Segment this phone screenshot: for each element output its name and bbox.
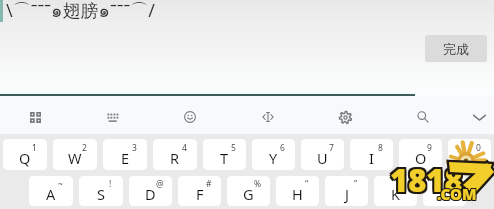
staticText: (: [403, 178, 406, 190]
staticText: J: [345, 184, 349, 204]
staticText: H: [292, 184, 303, 204]
button[interactable]: Move cursor: [251, 100, 285, 134]
staticText: .COM: [438, 185, 478, 205]
staticText: 1818: [392, 159, 465, 201]
staticText: 7: [329, 142, 334, 154]
button[interactable]: S: [79, 176, 123, 206]
button[interactable]: W: [53, 139, 97, 170]
staticText: S: [97, 184, 105, 204]
button[interactable]: Hide keyboard: [462, 100, 494, 134]
staticText: 6: [280, 142, 285, 154]
staticText: 1818: [390, 161, 463, 203]
staticText: 1818: [390, 157, 463, 199]
staticText: .COM: [436, 185, 476, 205]
staticText: %: [254, 178, 262, 190]
staticText: E: [121, 148, 130, 168]
staticText: .COM: [437, 184, 477, 204]
staticText: #: [206, 178, 212, 190]
staticText: 完成: [443, 41, 469, 57]
staticText: .COM: [438, 183, 478, 203]
staticText: ~: [58, 178, 63, 190]
staticText: A: [46, 184, 56, 204]
staticText: 2: [82, 142, 87, 154]
staticText: .COM: [437, 185, 477, 205]
button[interactable]: R: [153, 139, 197, 170]
button[interactable]: Emoticons: [173, 100, 207, 134]
staticText: O: [415, 148, 427, 168]
staticText: 9: [427, 142, 432, 154]
staticText: 0: [476, 142, 481, 154]
staticText: 1818: [392, 157, 465, 199]
button[interactable]: Q: [3, 139, 47, 170]
staticText: G: [243, 184, 254, 204]
button[interactable]: J: [325, 176, 368, 206]
staticText: !: [109, 178, 112, 190]
staticText: .COM: [436, 183, 476, 203]
staticText: “: [305, 178, 309, 190]
staticText: U: [317, 148, 328, 168]
staticText: 1818: [388, 159, 461, 201]
staticText: F: [196, 184, 204, 204]
button[interactable]: U: [301, 139, 344, 170]
staticText: T: [220, 148, 229, 168]
staticText: 1818: [388, 161, 461, 203]
staticText: 5: [231, 142, 236, 154]
staticText: @: [156, 178, 164, 190]
button[interactable]: Y: [252, 139, 295, 170]
button[interactable]: A: [29, 176, 73, 206]
staticText: K: [391, 184, 400, 204]
button[interactable]: G: [227, 176, 270, 206]
button[interactable]: 完成: [425, 35, 487, 62]
button[interactable]: L: [423, 176, 466, 206]
staticText: I: [369, 148, 374, 168]
staticText: \⌒ˉˉˉ๑翅膀๑ˉˉˉ⌒/: [6, 0, 155, 25]
button[interactable]: E: [103, 139, 147, 170]
staticText: P: [465, 148, 474, 168]
staticText: R: [170, 148, 180, 168]
staticText: D: [145, 184, 156, 204]
button[interactable]: H: [276, 176, 319, 206]
staticText: 8: [378, 142, 383, 154]
staticText: ”: [354, 178, 358, 190]
staticText: W: [68, 148, 82, 168]
staticText: .COM: [437, 183, 477, 203]
staticText: ): [452, 178, 455, 190]
button[interactable]: D: [129, 176, 172, 206]
staticText: Y: [269, 148, 278, 168]
button[interactable]: O: [399, 139, 442, 170]
staticText: 4: [182, 142, 187, 154]
button[interactable]: Symbols: [18, 100, 52, 134]
staticText: 1818: [388, 157, 461, 199]
button[interactable]: T: [203, 139, 246, 170]
button[interactable]: Search: [406, 100, 440, 134]
button[interactable]: Settings: [328, 100, 362, 134]
staticText: L: [441, 184, 449, 204]
staticText: 1818: [390, 159, 463, 201]
button[interactable]: K: [374, 176, 417, 206]
button[interactable]: I: [350, 139, 393, 170]
staticText: 3: [132, 142, 137, 154]
staticText: 1: [32, 142, 37, 154]
staticText: .COM: [438, 184, 478, 204]
button[interactable]: Keyboard layout: [96, 100, 130, 134]
button[interactable]: P: [448, 139, 491, 170]
staticText: .COM: [436, 184, 476, 204]
staticText: Q: [19, 148, 31, 168]
staticText: 1818: [392, 161, 465, 203]
button[interactable]: F: [178, 176, 221, 206]
